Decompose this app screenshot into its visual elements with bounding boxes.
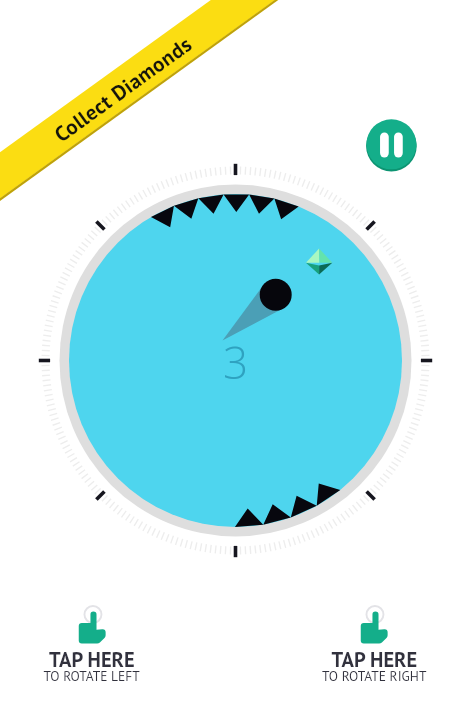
- button[interactable]: Tap here to rotate right: [236, 592, 472, 724]
- button[interactable]: Tap here to rotate left: [0, 592, 236, 724]
- button[interactable]: Pause: [366, 119, 416, 169]
